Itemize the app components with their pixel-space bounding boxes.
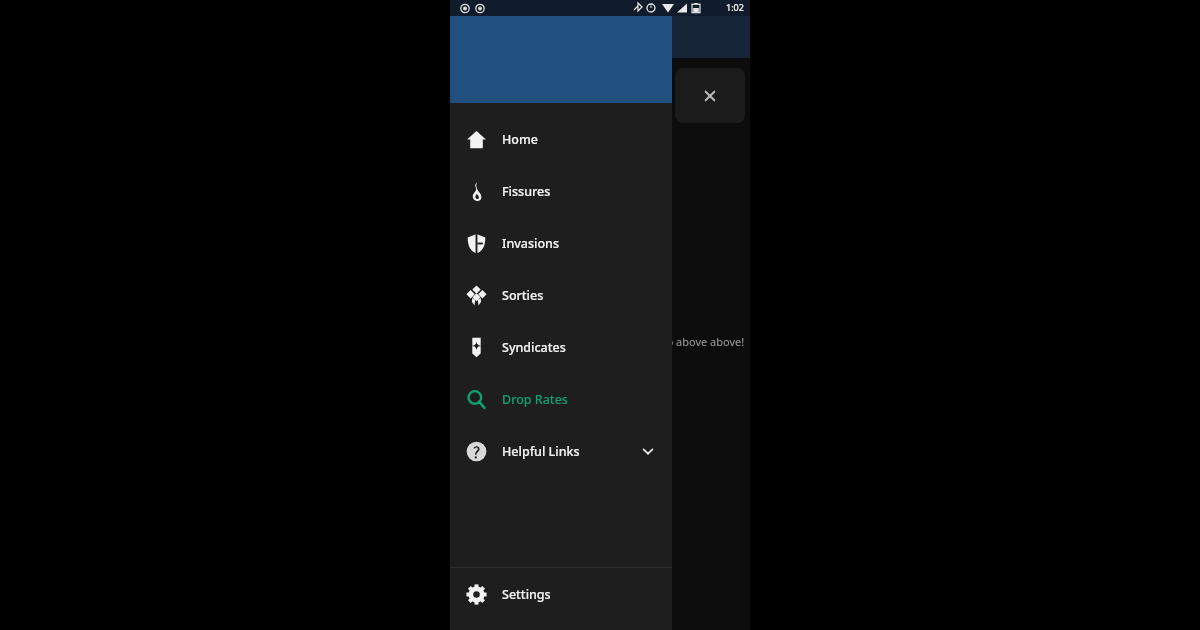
- staticText: Fissures: [502, 183, 551, 200]
- button[interactable]: Sorties: [450, 269, 672, 321]
- button[interactable]: Invasions: [450, 217, 672, 269]
- staticText: Drop Rates: [502, 391, 568, 408]
- staticText: Settings: [502, 586, 551, 603]
- staticText: Invasions: [502, 235, 560, 252]
- staticText: Home: [502, 131, 539, 148]
- staticText: 1:02: [726, 1, 744, 13]
- staticText: Tap above above!: [655, 334, 745, 349]
- staticText: Helpful Links: [502, 443, 580, 460]
- button[interactable]: Drop Rates: [450, 373, 672, 425]
- staticText: Syndicates: [502, 339, 566, 356]
- button[interactable]: Fissures: [450, 165, 672, 217]
- button[interactable]: Syndicates: [450, 321, 672, 373]
- button[interactable]: Home: [450, 113, 672, 165]
- staticText: Sorties: [502, 287, 544, 304]
- button[interactable]: Close: [675, 68, 745, 123]
- button[interactable]: Settings: [450, 568, 672, 620]
- button[interactable]: Helpful Links: [450, 425, 672, 477]
